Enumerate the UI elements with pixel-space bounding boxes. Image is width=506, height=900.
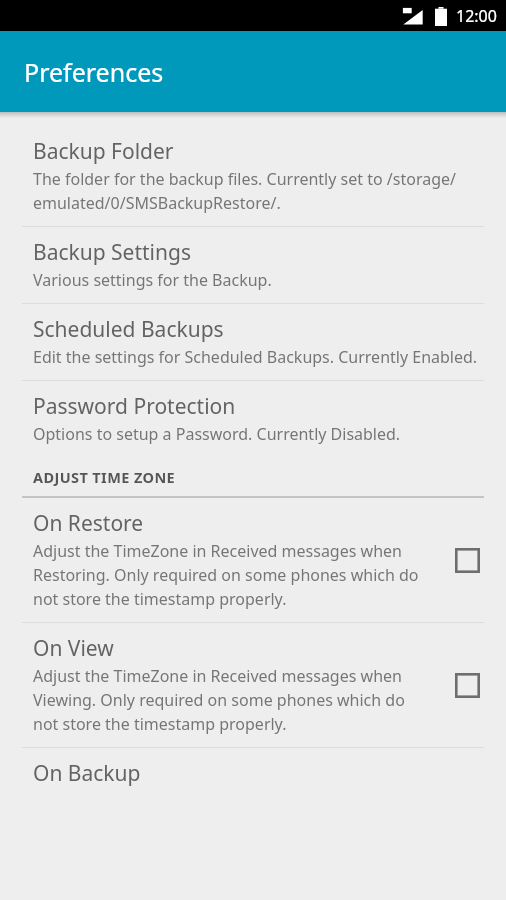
staticText: Backup Settings	[33, 238, 191, 267]
staticText: 12:00	[456, 5, 497, 27]
staticText: Adjust the TimeZone in Received messages…	[33, 540, 430, 610]
staticText: Backup Folder	[33, 137, 174, 166]
button[interactable]: Backup Folder	[0, 126, 506, 226]
button[interactable]: On Backup	[0, 748, 506, 800]
staticText: Various settings for the Backup.	[33, 269, 272, 291]
button[interactable]: Toggle checkbox	[444, 662, 490, 708]
button[interactable]: Password Protection	[0, 381, 506, 457]
button[interactable]: Scheduled Backups	[0, 304, 506, 380]
staticText: Preferences	[24, 55, 164, 89]
button[interactable]: Backup Settings	[0, 227, 506, 303]
staticText: Edit the settings for Scheduled Backups.…	[33, 346, 478, 368]
staticText: On View	[33, 634, 114, 663]
staticText: Password Protection	[33, 392, 236, 421]
staticText: Adjust the TimeZone in Received messages…	[33, 665, 430, 735]
button[interactable]: On Restore	[0, 498, 506, 622]
staticText: Options to setup a Password. Currently D…	[33, 423, 401, 445]
staticText: ADJUST TIME ZONE	[33, 467, 176, 487]
button[interactable]: Toggle checkbox	[444, 537, 490, 583]
button[interactable]: On View	[0, 623, 506, 747]
staticText: Scheduled Backups	[33, 315, 224, 344]
staticText: The folder for the backup files. Current…	[33, 168, 482, 214]
staticText: On Backup	[33, 759, 141, 788]
staticText: On Restore	[33, 509, 144, 538]
